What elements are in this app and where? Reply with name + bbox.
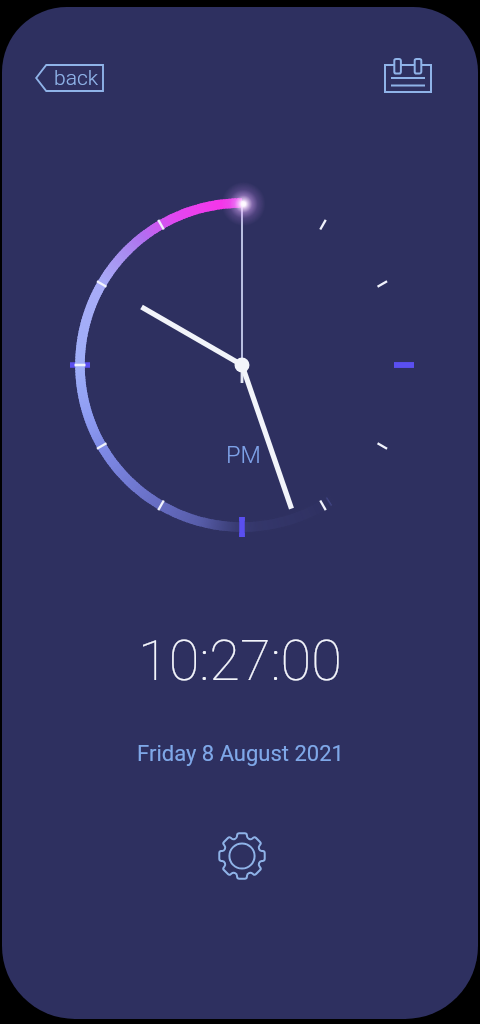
staticText: 10:27:00: [138, 628, 342, 694]
staticText: Friday 8 August 2021: [137, 741, 344, 767]
staticText: PM: [226, 441, 261, 469]
staticText: back: [54, 66, 99, 91]
button[interactable]: Calendar: [377, 51, 439, 101]
button[interactable]: Settings: [214, 828, 270, 884]
button[interactable]: back: [35, 64, 104, 92]
